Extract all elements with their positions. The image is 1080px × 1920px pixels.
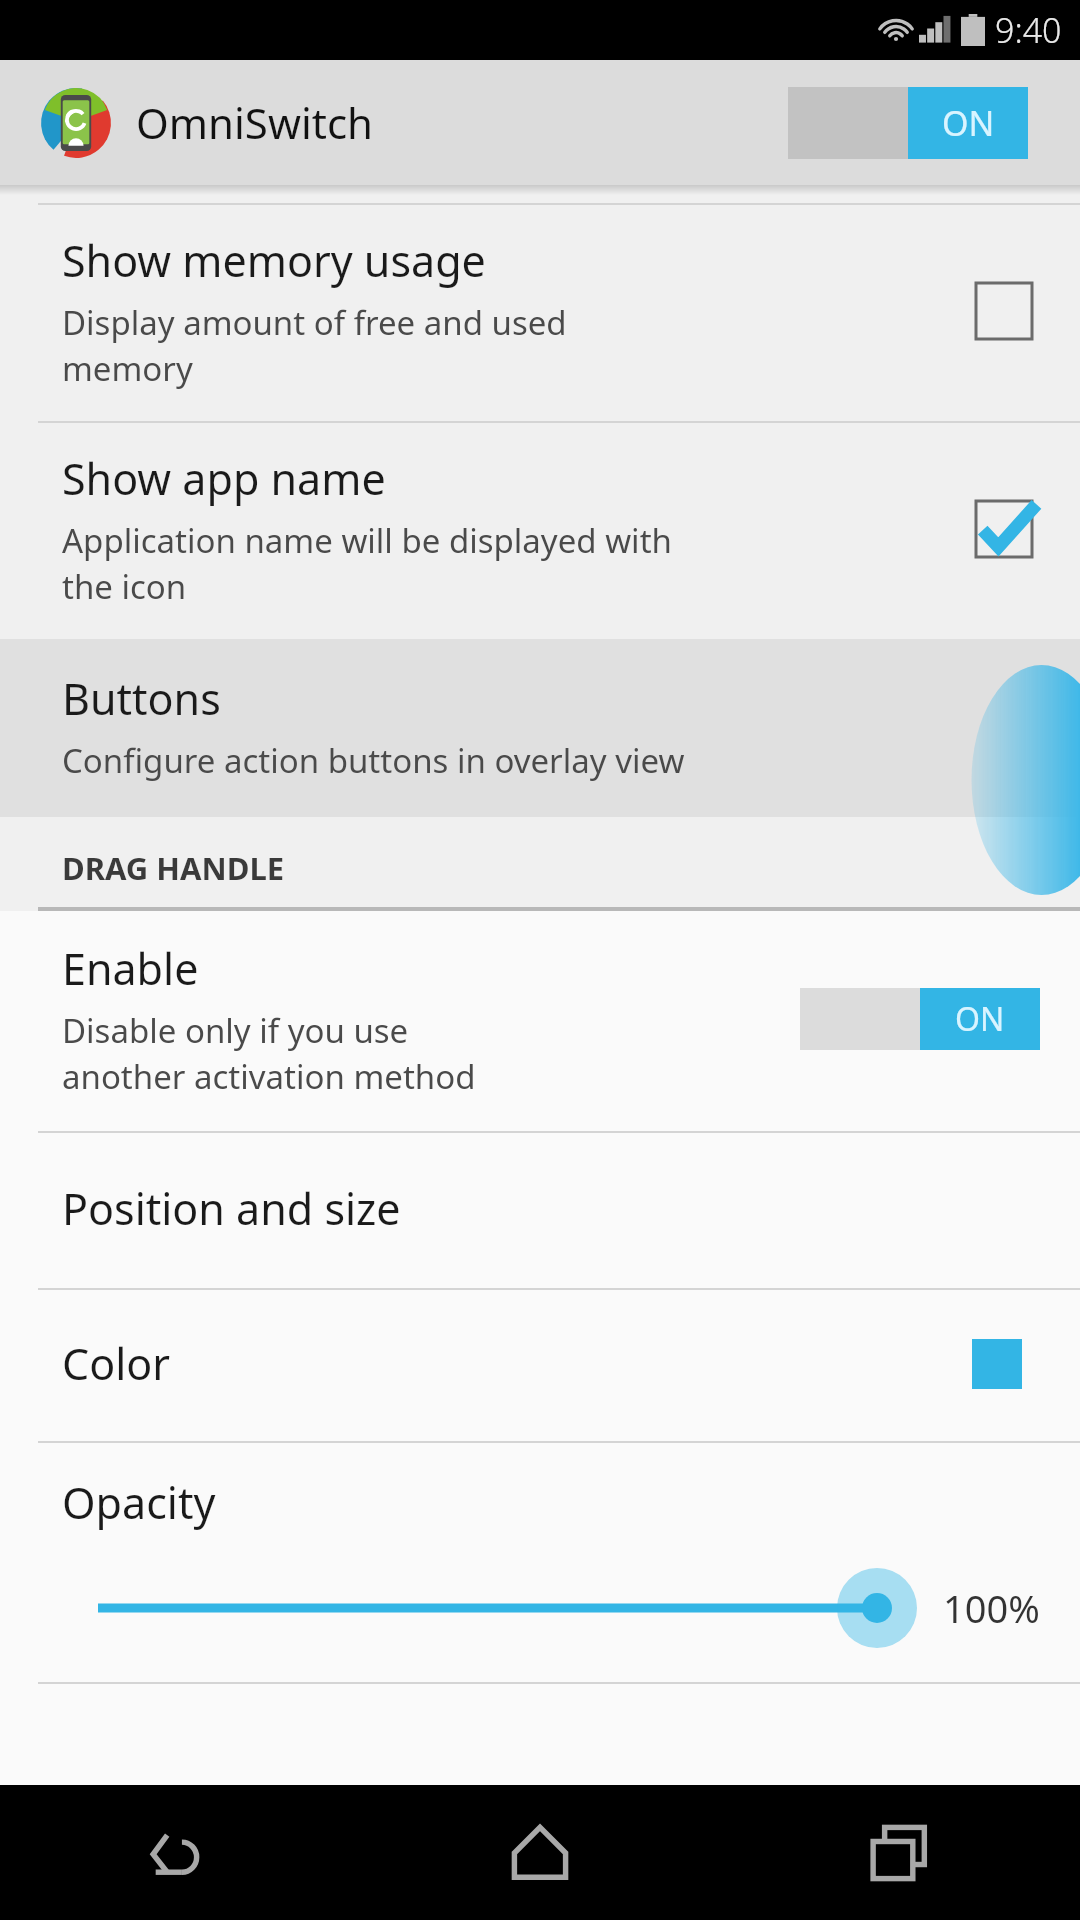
button[interactable]: Opacity	[0, 1443, 1080, 1682]
staticText: 100%	[943, 1582, 1040, 1634]
staticText: Display amount of free and used memory	[62, 300, 567, 391]
staticText: Color	[62, 1334, 171, 1393]
staticText: DRAG HANDLE	[62, 847, 285, 889]
button[interactable]: Position and size	[0, 1133, 1080, 1288]
staticText: Position and size	[62, 1179, 401, 1238]
staticText: Show memory usage	[62, 231, 486, 290]
button[interactable]: Home	[360, 1785, 720, 1920]
button[interactable]: Color	[0, 1290, 1080, 1441]
staticText: Configure action buttons in overlay view	[62, 738, 685, 783]
staticText: Disable only if you use another activati…	[62, 1008, 476, 1099]
other: Wi-Fi	[877, 15, 915, 45]
other: Battery	[961, 14, 985, 46]
button[interactable]: ON	[788, 87, 1028, 159]
staticText: Show app name	[62, 449, 386, 508]
staticText: Buttons	[62, 669, 221, 728]
button[interactable]: Enable	[0, 911, 1080, 1131]
staticText: ON	[942, 100, 995, 146]
staticText: Opacity	[62, 1473, 216, 1532]
staticText: Application name will be displayed with …	[62, 518, 672, 609]
staticText: ON	[955, 997, 1005, 1041]
staticText: Enable	[62, 939, 199, 998]
button[interactable]: Recent apps	[720, 1785, 1080, 1920]
button[interactable]: Show app name	[0, 423, 1080, 639]
staticText: 9:40	[995, 7, 1062, 53]
other: Signal	[919, 15, 953, 45]
button[interactable]: Show memory usage	[0, 205, 1080, 421]
button[interactable]: Buttons	[0, 639, 1080, 817]
button[interactable]: Back	[0, 1785, 360, 1920]
staticText: OmniSwitch	[136, 94, 374, 151]
